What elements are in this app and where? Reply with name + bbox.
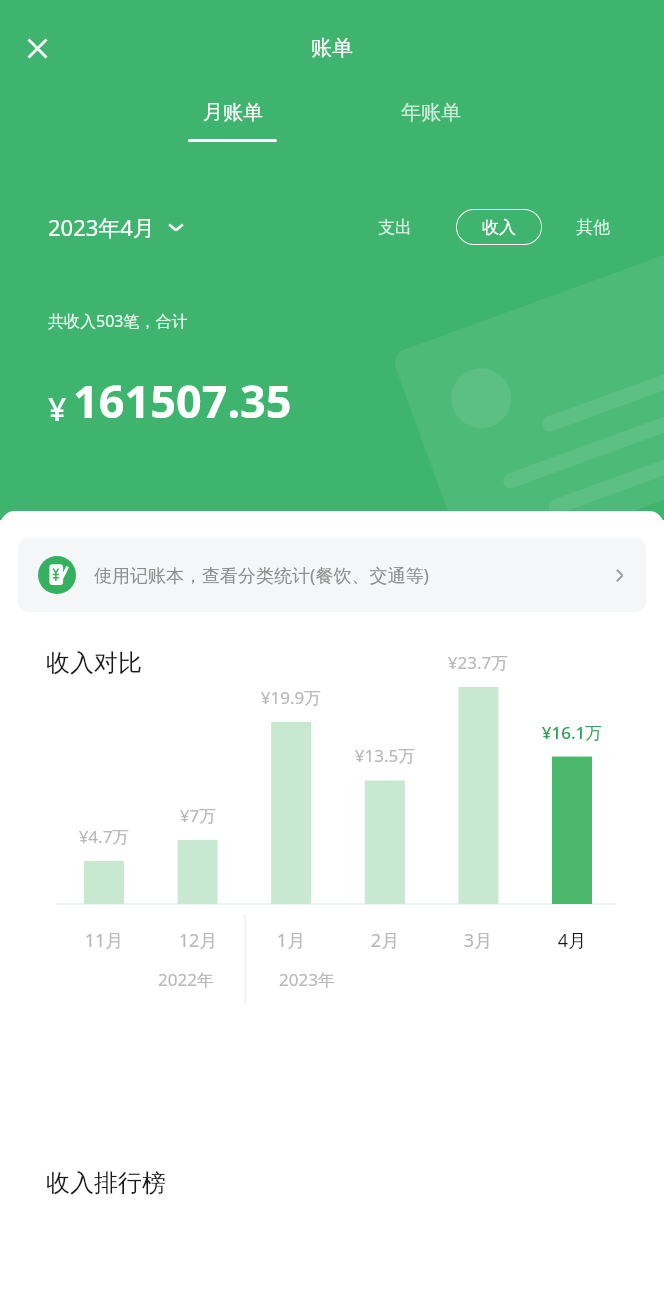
staticText: 2023年4月 xyxy=(48,212,155,242)
staticText: 账单 xyxy=(311,35,353,61)
staticText: 2月 xyxy=(335,928,435,953)
staticText: 月账单 xyxy=(203,100,263,125)
button[interactable]: 其他 xyxy=(570,211,616,244)
button[interactable]: 收入 xyxy=(456,209,542,245)
staticText: 使用记账本，查看分类统计(餐饮、交通等) xyxy=(94,563,429,588)
staticText: 收入排行榜 xyxy=(46,1168,166,1198)
staticText: 收入 xyxy=(482,217,516,238)
staticText: 收入对比 xyxy=(46,648,142,678)
staticText: 4月 xyxy=(522,928,622,953)
staticText: 支出 xyxy=(378,217,412,238)
staticText: 2023年 xyxy=(257,968,357,991)
staticText: 12月 xyxy=(148,928,248,953)
staticText: 3月 xyxy=(428,928,528,953)
button[interactable]: Close xyxy=(12,23,62,73)
staticText: ¥23.7万 xyxy=(428,651,528,674)
staticText: 11月 xyxy=(54,928,154,953)
staticText: 年账单 xyxy=(401,100,461,125)
button[interactable]: 月账单 xyxy=(180,100,285,142)
staticText: ¥13.5万 xyxy=(335,744,435,767)
staticText: ¥7万 xyxy=(148,804,248,827)
staticText: ¥19.9万 xyxy=(241,686,341,709)
staticText: 共收入503笔，合计 xyxy=(48,310,188,332)
staticText: 161507.35 xyxy=(73,370,292,431)
button[interactable]: 年账单 xyxy=(378,100,483,125)
staticText: 1月 xyxy=(241,928,341,953)
button[interactable]: 支出 xyxy=(372,211,418,244)
button[interactable]: 2023年4月 xyxy=(44,208,189,246)
staticText: ¥4.7万 xyxy=(54,825,154,848)
staticText: 2022年 xyxy=(136,968,236,991)
staticText: ¥ xyxy=(48,387,67,431)
staticText: ¥16.1万 xyxy=(522,721,622,744)
button[interactable]: 使用记账本，查看分类统计(餐饮、交通等) xyxy=(18,538,646,612)
staticText: 其他 xyxy=(576,217,610,238)
